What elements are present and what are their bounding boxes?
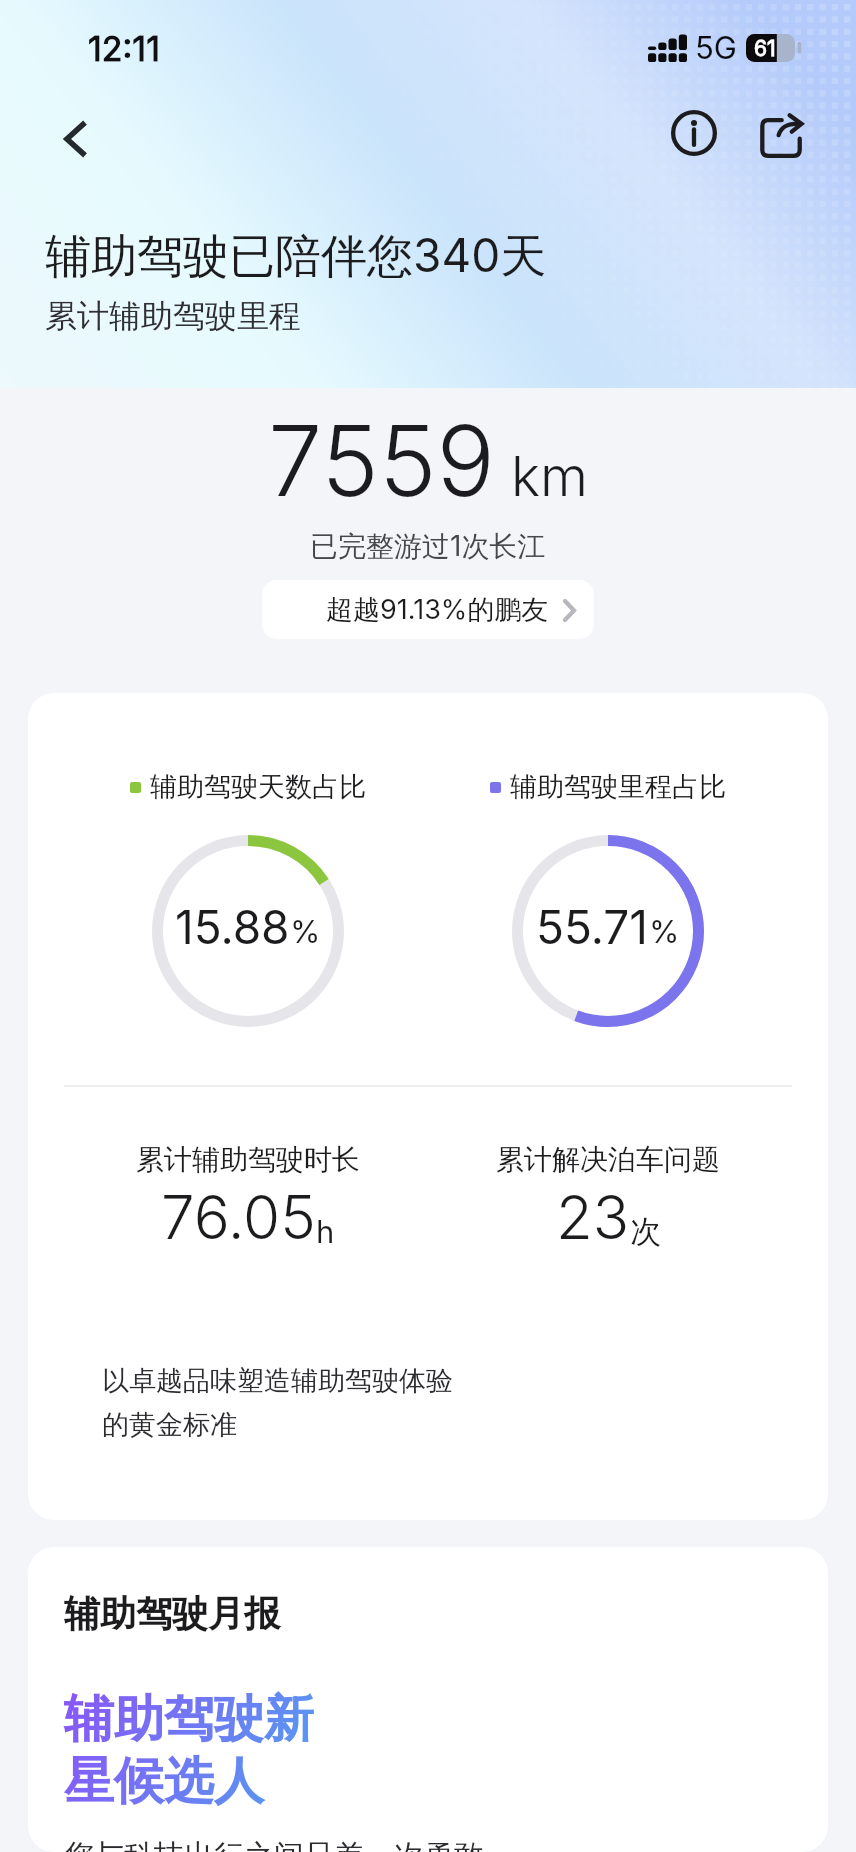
- staticText: 累计辅助驾驶时长: [136, 1142, 360, 1177]
- staticText: 15.88: [175, 899, 290, 955]
- staticText: 辅助驾驶天数占比: [150, 770, 366, 804]
- staticText: km: [511, 443, 589, 510]
- button[interactable]: Back: [38, 100, 104, 166]
- staticText: 超越91.13%的鹏友: [326, 593, 549, 627]
- staticText: 辅助驾驶里程占比: [510, 770, 726, 804]
- staticText: 7559: [268, 402, 495, 519]
- staticText: h: [316, 1213, 335, 1251]
- staticText: 辅助驾驶新 星候选人: [64, 1688, 314, 1813]
- staticText: 累计辅助驾驶里程: [45, 296, 301, 336]
- staticText: 辅助驾驶月报: [64, 1591, 280, 1636]
- staticText: 次: [630, 1212, 661, 1251]
- staticText: 23: [556, 1181, 630, 1254]
- staticText: 以卓越品味塑造辅助驾驶体验 的黄金标准: [102, 1364, 453, 1442]
- staticText: %: [649, 913, 680, 951]
- button[interactable]: Share: [746, 96, 820, 170]
- staticText: 累计解决泊车问题: [496, 1142, 720, 1177]
- staticText: 辅助驾驶已陪伴您340天: [45, 227, 547, 285]
- staticText: 您与科技出行之间只差一次勇敢: [64, 1837, 484, 1852]
- staticText: 5G: [695, 29, 737, 67]
- button[interactable]: 超越91.13%的鹏友: [262, 580, 594, 639]
- staticText: 55.71: [536, 899, 649, 955]
- button[interactable]: Info: [657, 96, 731, 170]
- staticText: %: [290, 913, 321, 951]
- staticText: 61: [754, 36, 776, 61]
- staticText: 12:11: [88, 28, 161, 69]
- staticText: 76.05: [161, 1181, 316, 1254]
- staticText: 已完整游过1次长江: [310, 529, 546, 564]
